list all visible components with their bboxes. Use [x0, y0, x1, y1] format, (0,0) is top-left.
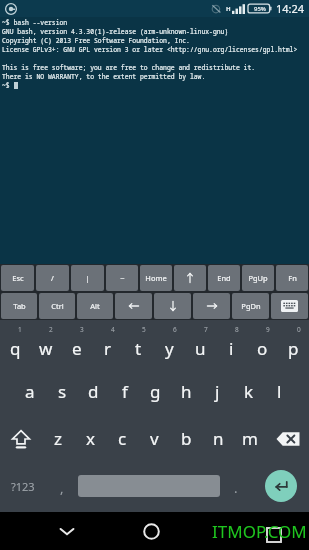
button[interactable]: l	[264, 368, 295, 415]
button[interactable]: Home	[140, 265, 172, 291]
staticText: |	[85, 273, 90, 283]
button[interactable]: |	[71, 265, 104, 291]
button[interactable]: f	[109, 368, 140, 415]
button[interactable]: Left	[115, 293, 152, 319]
staticText: t	[135, 337, 142, 360]
staticText: Home	[145, 273, 167, 283]
staticText: End	[217, 273, 231, 283]
button[interactable]: Recents	[261, 522, 287, 548]
button[interactable]: 5	[123, 321, 154, 368]
staticText: 8	[235, 325, 239, 334]
button[interactable]: z	[42, 415, 74, 462]
button[interactable]: s	[46, 368, 78, 415]
staticText: Fn	[288, 273, 297, 283]
button[interactable]: ~	[106, 265, 138, 291]
button[interactable]: a	[14, 368, 46, 415]
staticText: 4	[111, 325, 115, 334]
staticText: Copyright (C) 2013 Free Software Foundat…	[2, 36, 309, 45]
button[interactable]: 7	[185, 321, 216, 368]
button[interactable]: Tab	[1, 293, 37, 319]
staticText: v	[150, 427, 159, 450]
button[interactable]: Alt	[77, 293, 113, 319]
button[interactable]: Esc	[1, 265, 34, 291]
staticText: c	[118, 427, 127, 450]
staticText: 7	[204, 325, 208, 334]
staticText: l	[277, 380, 282, 403]
staticText: ?123	[11, 479, 35, 494]
button[interactable]: Switch keyboard	[271, 293, 308, 319]
button[interactable]: k	[233, 368, 264, 415]
button[interactable]: 4	[92, 321, 123, 368]
button[interactable]: .	[220, 462, 252, 510]
button[interactable]: 8	[216, 321, 247, 368]
staticText: b	[181, 427, 192, 450]
button[interactable]: n	[202, 415, 234, 462]
button[interactable]: Home	[136, 516, 166, 546]
staticText: ~$ bash --version	[2, 18, 309, 27]
staticText: q	[10, 337, 21, 360]
staticText: GNU bash, version 4.3.30(1)-release (arm…	[2, 27, 309, 36]
button[interactable]: h	[171, 368, 202, 415]
staticText: /	[51, 273, 54, 283]
staticText: H	[226, 5, 231, 13]
button[interactable]: Ctrl	[39, 293, 75, 319]
button[interactable]: PgUp	[242, 265, 274, 291]
staticText: 6	[173, 325, 177, 334]
button[interactable]: j	[202, 368, 233, 415]
button[interactable]: End	[208, 265, 240, 291]
staticText: m	[242, 427, 258, 450]
staticText: License GPLv3+: GNU GPL version 3 or lat…	[2, 45, 309, 54]
button[interactable]: PgDn	[232, 293, 269, 319]
staticText: g	[150, 380, 161, 403]
staticText: 14:24	[276, 1, 305, 16]
staticText: Esc	[12, 273, 24, 283]
button[interactable]: 0	[278, 321, 309, 368]
button[interactable]: g	[140, 368, 171, 415]
staticText: PgUp	[248, 273, 268, 283]
button[interactable]: 1	[0, 321, 30, 368]
staticText: 2	[49, 325, 53, 334]
button[interactable]: Backspace	[266, 415, 309, 462]
button[interactable]: ,	[46, 462, 78, 510]
button[interactable]: Right	[193, 293, 230, 319]
staticText: Alt	[90, 301, 100, 311]
button[interactable]: b	[170, 415, 202, 462]
staticText: 5	[142, 325, 146, 334]
staticText: s	[58, 380, 67, 403]
staticText: o	[257, 337, 268, 360]
button[interactable]: c	[106, 415, 138, 462]
staticText: r	[104, 337, 112, 360]
staticText: d	[88, 380, 99, 403]
staticText: u	[195, 337, 206, 360]
button[interactable]: Fn	[276, 265, 308, 291]
staticText: Tab	[13, 301, 26, 311]
staticText: e	[72, 337, 82, 360]
button[interactable]: d	[78, 368, 109, 415]
staticText: 3	[80, 325, 84, 334]
staticText: k	[244, 380, 254, 403]
button[interactable]: v	[138, 415, 170, 462]
staticText: PgDn	[241, 301, 261, 311]
staticText: .	[234, 479, 238, 497]
button[interactable]: Hide keyboard	[52, 516, 82, 546]
button[interactable]: m	[234, 415, 266, 462]
button[interactable]: 9	[247, 321, 278, 368]
button[interactable]: Down	[154, 293, 191, 319]
button[interactable]: ?123	[0, 462, 46, 510]
staticText: 0	[297, 325, 301, 334]
button[interactable]: Shift	[0, 415, 42, 462]
staticText: p	[288, 337, 299, 360]
button[interactable]: 3	[61, 321, 92, 368]
button[interactable]: x	[74, 415, 106, 462]
button[interactable]: /	[36, 265, 69, 291]
button[interactable]: 6	[154, 321, 185, 368]
staticText: There is NO WARRANTY, to the extent perm…	[2, 72, 309, 81]
button[interactable]: Enter	[265, 470, 297, 502]
staticText: ITMOP.COM	[212, 520, 307, 543]
staticText: ~	[120, 273, 125, 283]
staticText: 1	[18, 325, 22, 334]
button[interactable]: Up	[174, 265, 206, 291]
button[interactable]: 2	[30, 321, 61, 368]
staticText: n	[213, 427, 224, 450]
